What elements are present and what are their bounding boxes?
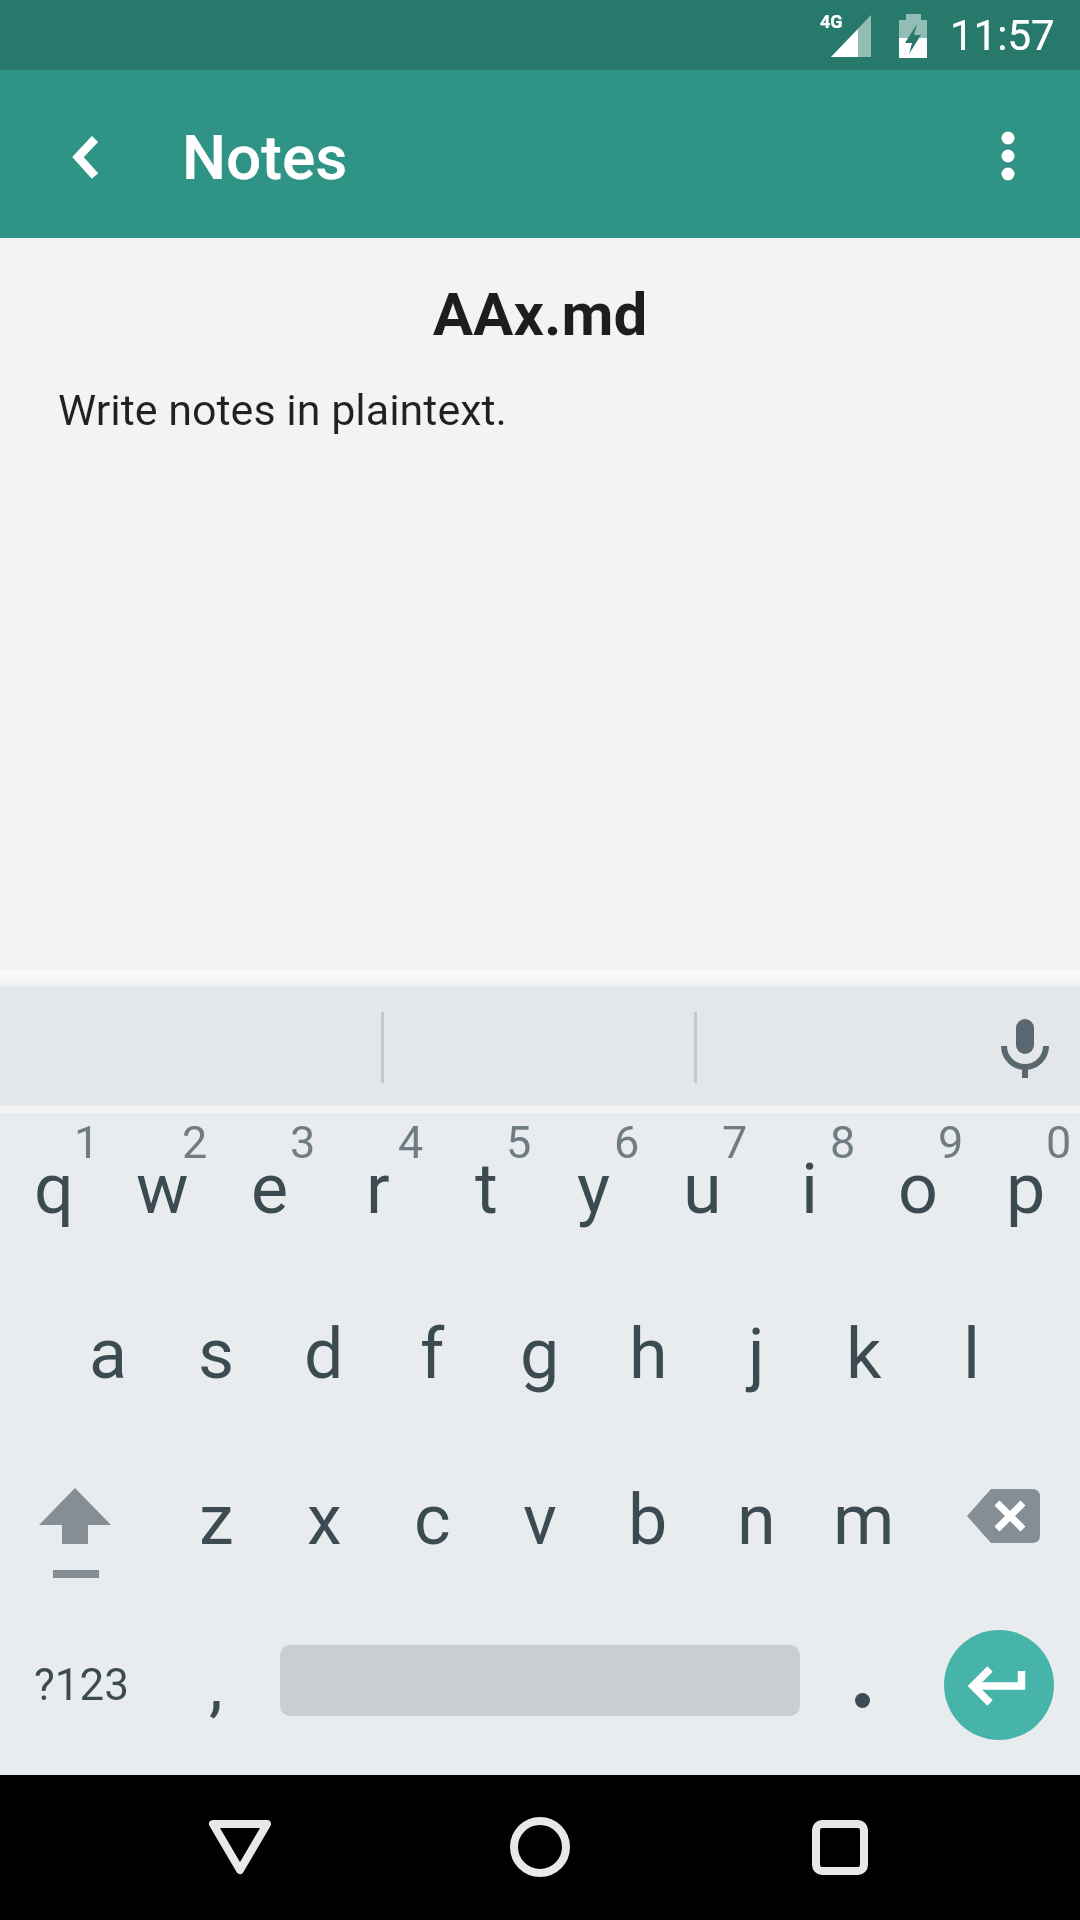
button[interactable] (170, 1777, 310, 1917)
button[interactable]: m (810, 1438, 918, 1602)
button[interactable]: s (162, 1272, 270, 1436)
button[interactable] (808, 1603, 916, 1767)
staticText: d (304, 1313, 344, 1395)
staticText: z (199, 1479, 234, 1561)
button[interactable] (770, 1777, 910, 1917)
staticText: h (629, 1313, 668, 1395)
staticText: 2 (182, 1116, 208, 1169)
staticText: ?123 (34, 1659, 129, 1711)
staticText: u (683, 1148, 722, 1230)
staticText: l (963, 1313, 981, 1395)
button[interactable]: j (702, 1272, 810, 1436)
staticText: c (414, 1479, 451, 1561)
button[interactable]: x (270, 1438, 378, 1602)
staticText: 7 (722, 1116, 748, 1169)
staticText: t (475, 1148, 498, 1230)
button[interactable]: c (378, 1438, 486, 1602)
button[interactable]: w (108, 1107, 216, 1271)
staticText: 0 (1046, 1116, 1072, 1169)
button[interactable]: , (162, 1603, 270, 1767)
button[interactable]: t (432, 1107, 540, 1271)
staticText: 8 (830, 1116, 856, 1169)
staticText: a (89, 1313, 128, 1395)
button[interactable]: n (702, 1438, 810, 1602)
staticText: 1 (74, 1116, 100, 1169)
staticText: 9 (938, 1116, 964, 1169)
button[interactable]: h (594, 1272, 702, 1436)
staticText: g (520, 1313, 560, 1395)
button[interactable] (965, 987, 1080, 1106)
button[interactable] (0, 1438, 162, 1602)
button[interactable]: ?123 (0, 1603, 162, 1767)
button[interactable]: o (864, 1107, 972, 1271)
staticText: o (898, 1148, 938, 1230)
staticText: 5 (506, 1116, 532, 1169)
button[interactable]: i (756, 1107, 864, 1271)
staticText: r (366, 1148, 390, 1230)
staticText: k (846, 1313, 882, 1395)
staticText: 11:57 (950, 11, 1055, 60)
button[interactable]: y (540, 1107, 648, 1271)
staticText: 4G (820, 11, 843, 32)
staticText: v (523, 1479, 557, 1561)
button[interactable] (944, 1630, 1054, 1740)
button[interactable]: e (216, 1107, 324, 1271)
button[interactable]: l (918, 1272, 1026, 1436)
button[interactable] (958, 104, 1058, 204)
button[interactable]: z (162, 1438, 270, 1602)
button[interactable] (36, 104, 136, 204)
button[interactable]: v (486, 1438, 594, 1602)
staticText: 3 (290, 1116, 316, 1169)
staticText: e (251, 1148, 289, 1230)
button[interactable]: a (54, 1272, 162, 1436)
button[interactable]: d (270, 1272, 378, 1436)
staticText: 4 (398, 1116, 424, 1169)
staticText: Notes (182, 121, 348, 194)
staticText: j (748, 1313, 765, 1395)
button[interactable]: g (486, 1272, 594, 1436)
staticText: s (198, 1313, 235, 1395)
button[interactable]: k (810, 1272, 918, 1436)
staticText: 6 (614, 1116, 640, 1169)
button[interactable] (918, 1438, 1080, 1602)
button[interactable]: q (0, 1107, 108, 1271)
staticText: f (420, 1313, 445, 1395)
staticText: i (801, 1148, 819, 1230)
staticText: m (833, 1479, 895, 1561)
staticText: q (34, 1148, 74, 1230)
staticText: x (307, 1479, 342, 1561)
staticText: n (737, 1479, 776, 1561)
staticText: p (1006, 1148, 1046, 1230)
button[interactable]: b (594, 1438, 702, 1602)
button[interactable]: f (378, 1272, 486, 1436)
staticText: AAx.md (0, 279, 1080, 349)
button[interactable]: p (972, 1107, 1080, 1271)
staticText: w (136, 1148, 189, 1230)
staticText: Write notes in plaintext. (58, 385, 507, 435)
staticText: y (577, 1148, 611, 1230)
button[interactable]: r (324, 1107, 432, 1271)
button[interactable] (470, 1777, 610, 1917)
staticText: b (628, 1479, 668, 1561)
staticText: , (209, 1644, 223, 1726)
button[interactable]: u (648, 1107, 756, 1271)
